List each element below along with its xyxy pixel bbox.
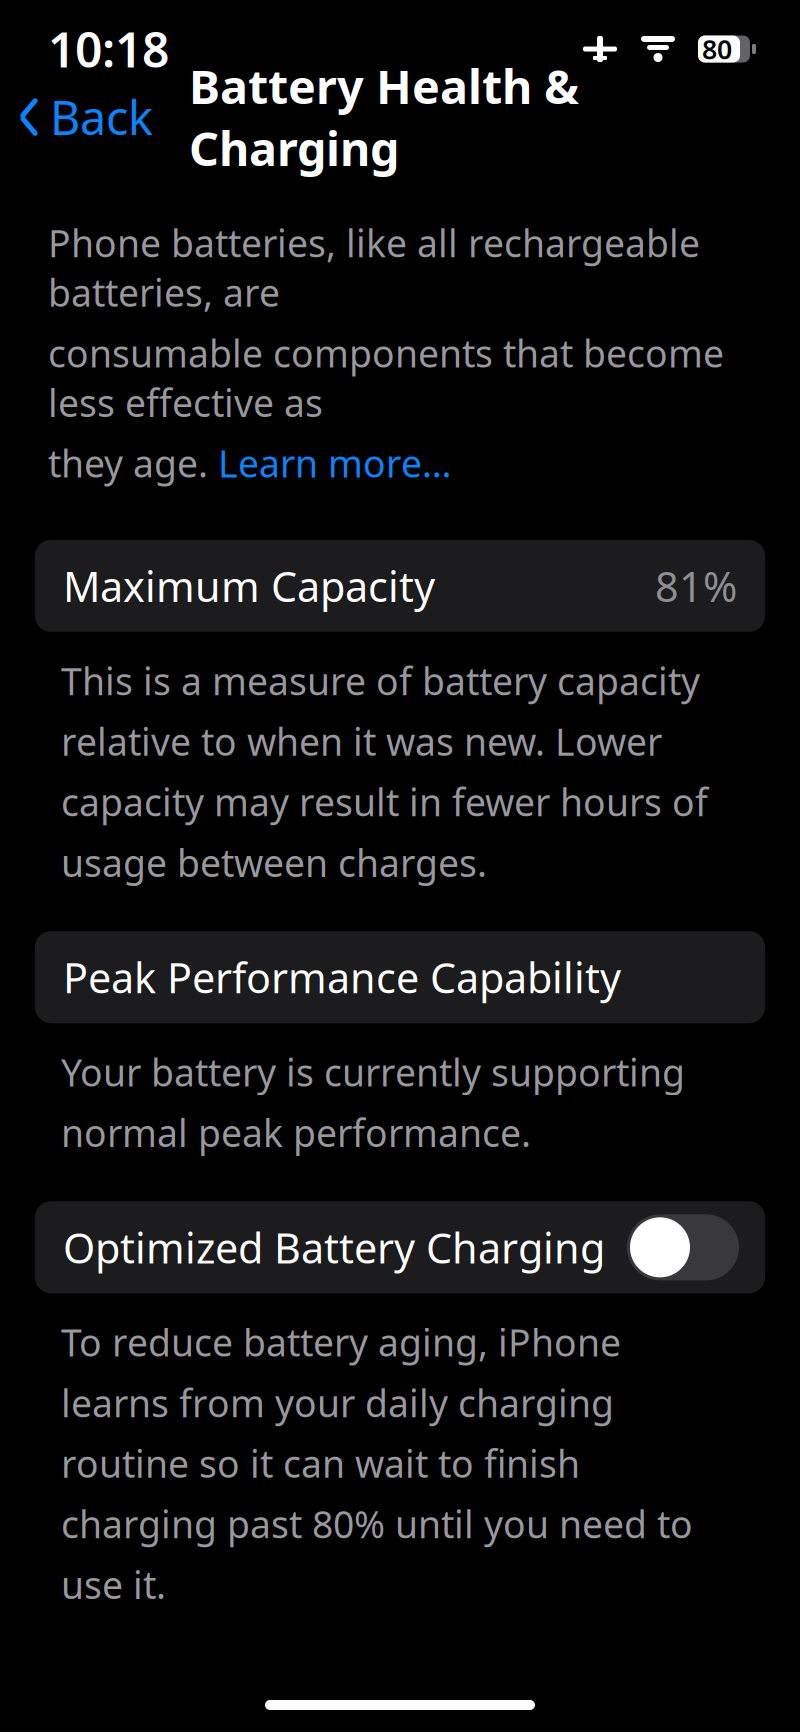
staticText: Optimized Battery Charging — [63, 1220, 605, 1275]
staticText: 10:18 — [48, 17, 169, 81]
staticText: Learn more… — [218, 438, 452, 488]
staticText: Back — [50, 86, 153, 148]
staticText: Peak Performance Capability — [63, 950, 621, 1005]
button[interactable]: Optimized Battery Charging — [35, 1201, 765, 1293]
button[interactable]: Peak Performance Capability — [35, 931, 765, 1023]
staticText: This is a measure of battery capacity re… — [61, 656, 708, 887]
button[interactable]: Learn more… — [218, 438, 452, 488]
staticText: To reduce battery aging, iPhone learns f… — [61, 1317, 693, 1609]
staticText: consumable components that become less e… — [48, 328, 724, 427]
staticText: Phone batteries, like all rechargeable b… — [48, 218, 700, 317]
staticText: Maximum Capacity — [63, 558, 435, 613]
staticText: Battery Health & Charging — [189, 55, 579, 179]
staticText: they age. — [48, 438, 218, 488]
staticText: Your battery is currently supporting nor… — [61, 1047, 685, 1157]
staticText: 81% — [655, 558, 737, 613]
button[interactable]: Maximum Capacity — [35, 540, 765, 632]
button[interactable]: Back — [0, 76, 153, 158]
staticText: 80 — [702, 31, 732, 67]
